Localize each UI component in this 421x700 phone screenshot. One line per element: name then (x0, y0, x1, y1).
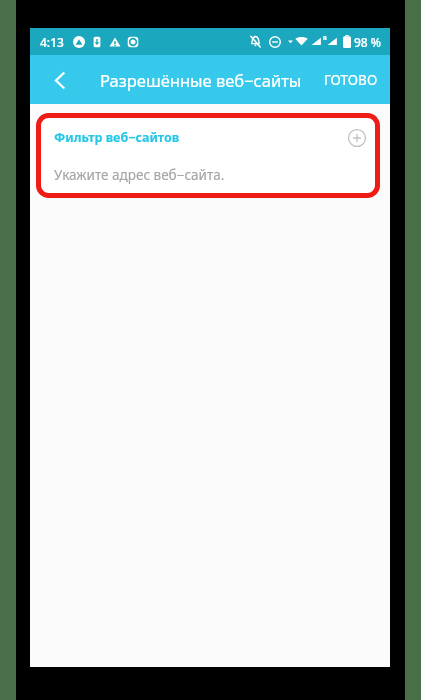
staticText: R (323, 34, 327, 42)
staticText: Разрешённые веб−сайты (100, 69, 302, 91)
button[interactable]: Укажите адрес веб−сайта. (40, 158, 380, 198)
button[interactable]: Назад (42, 62, 78, 98)
staticText: ГОТОВО (324, 71, 378, 89)
button[interactable]: ГОТОВО (312, 61, 390, 99)
staticText: Фильтр веб−сайтов (54, 129, 180, 146)
staticText: Укажите адрес веб−сайта. (54, 166, 225, 184)
staticText: 4:13 (40, 34, 64, 50)
button[interactable]: Фильтр веб−сайтов (40, 117, 380, 198)
button[interactable]: Добавить (343, 124, 371, 152)
staticText: 98 % (354, 34, 382, 50)
